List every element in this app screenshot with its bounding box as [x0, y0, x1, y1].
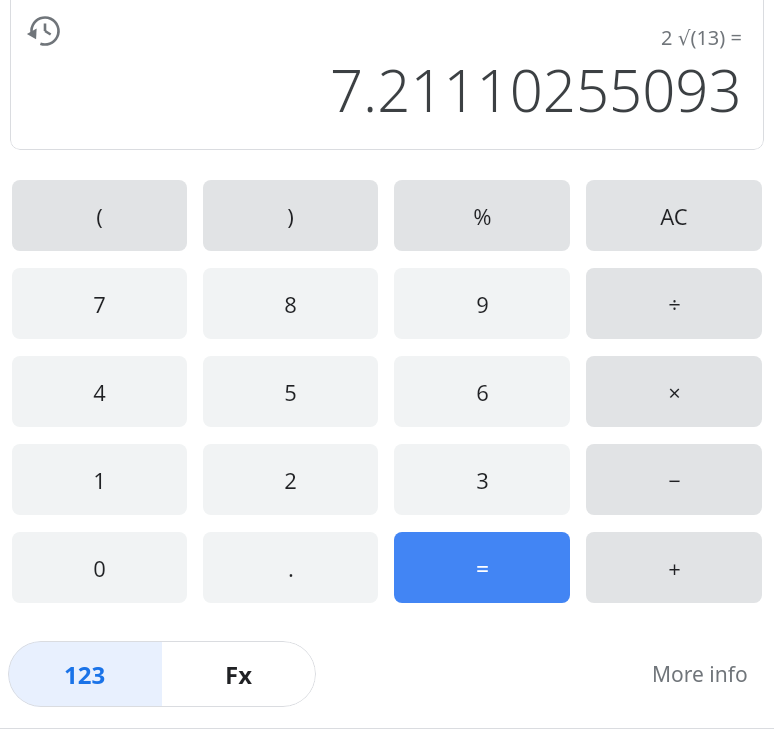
staticText: × [668, 377, 681, 407]
button[interactable]: 4 [12, 356, 187, 427]
staticText: 0 [93, 553, 106, 583]
staticText: 123 [64, 658, 106, 691]
staticText: ÷ [668, 289, 681, 319]
button[interactable]: = [394, 532, 570, 603]
staticText: 9 [476, 289, 489, 319]
staticText: ( [96, 201, 103, 231]
button[interactable]: AC [586, 180, 762, 251]
staticText: 1 [93, 465, 106, 495]
staticText: + [668, 553, 681, 583]
button[interactable]: ) [203, 180, 378, 251]
staticText: ) [287, 201, 294, 231]
staticText: = [476, 553, 489, 583]
staticText: 5 [284, 377, 297, 407]
staticText: 2 √(13) = [661, 24, 742, 51]
staticText: 8 [284, 289, 297, 319]
button[interactable]: ÷ [586, 268, 762, 339]
button[interactable]: 3 [394, 444, 570, 515]
staticText: 7 [93, 289, 106, 319]
button[interactable]: 123 [8, 641, 162, 707]
staticText: 6 [476, 377, 489, 407]
button[interactable]: 7 [12, 268, 187, 339]
staticText: 7.21110255093 [330, 50, 742, 129]
button[interactable]: Fx [162, 641, 316, 707]
staticText: More info [652, 660, 748, 689]
staticText: 3 [476, 465, 489, 495]
button[interactable]: 9 [394, 268, 570, 339]
staticText: − [668, 465, 681, 495]
staticText: 4 [93, 377, 106, 407]
button[interactable]: + [586, 532, 762, 603]
button[interactable]: 1 [12, 444, 187, 515]
button[interactable]: 6 [394, 356, 570, 427]
staticText: Fx [225, 658, 253, 691]
button[interactable]: 5 [203, 356, 378, 427]
staticText: % [473, 201, 492, 231]
button[interactable]: ( [12, 180, 187, 251]
button[interactable]: % [394, 180, 570, 251]
button[interactable]: 0 [12, 532, 187, 603]
button[interactable]: More info [652, 660, 748, 689]
staticText: AC [660, 201, 688, 231]
button[interactable]: × [586, 356, 762, 427]
button[interactable]: 8 [203, 268, 378, 339]
button[interactable]: . [203, 532, 378, 603]
button[interactable]: 2 [203, 444, 378, 515]
button[interactable]: − [586, 444, 762, 515]
button[interactable]: History [24, 10, 66, 52]
staticText: 2 [284, 465, 297, 495]
staticText: . [288, 553, 294, 583]
